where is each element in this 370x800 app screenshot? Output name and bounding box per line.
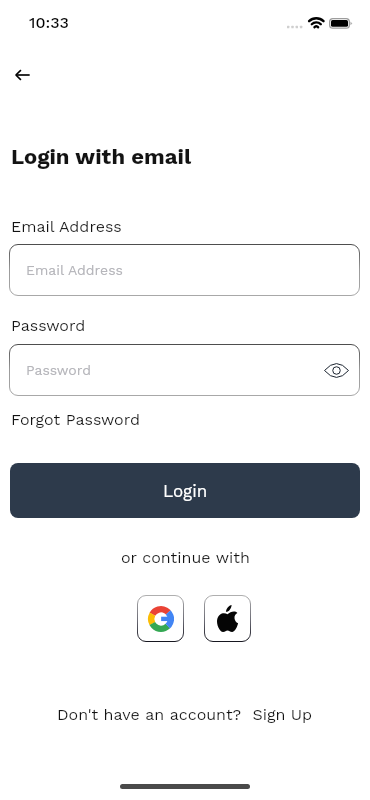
button[interactable]: Back bbox=[0, 53, 44, 97]
staticText: Email Address bbox=[11, 217, 122, 236]
button[interactable]: Sign Up bbox=[247, 705, 313, 724]
button[interactable]: Email Address bbox=[9, 244, 360, 296]
staticText: Password bbox=[11, 316, 86, 335]
staticText: Login with email bbox=[11, 144, 192, 170]
button[interactable]: Sign in with Google bbox=[137, 595, 184, 642]
staticText: Login bbox=[163, 481, 208, 501]
button[interactable]: Forgot Password bbox=[11, 410, 140, 429]
button[interactable]: Login bbox=[10, 463, 360, 518]
button[interactable]: Show password bbox=[321, 355, 351, 385]
button[interactable]: Password bbox=[9, 344, 360, 396]
staticText: Password bbox=[26, 362, 91, 378]
staticText: Don't have an account? bbox=[57, 705, 247, 724]
staticText: Email Address bbox=[26, 262, 123, 278]
button[interactable]: Sign in with Apple bbox=[204, 595, 251, 642]
staticText: or continue with bbox=[121, 548, 250, 567]
staticText: 10:33 bbox=[29, 13, 70, 32]
